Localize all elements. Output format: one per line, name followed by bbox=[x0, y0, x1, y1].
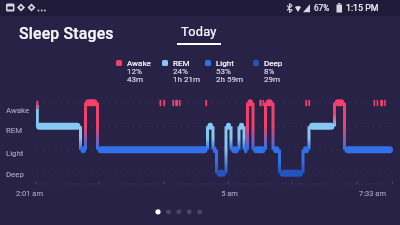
staticText: 5 am bbox=[221, 189, 238, 198]
staticText: 1:15 PM bbox=[346, 3, 379, 13]
staticText: Light bbox=[6, 149, 24, 158]
staticText: 2h 59m bbox=[216, 75, 243, 84]
staticText: Sleep Stages bbox=[19, 24, 114, 43]
staticText: 7:33 am bbox=[359, 189, 386, 198]
staticText: REM bbox=[6, 126, 23, 135]
staticText: REM bbox=[173, 59, 190, 68]
staticText: Today bbox=[181, 24, 217, 39]
staticText: 29m bbox=[264, 75, 281, 84]
staticText: 2:01 am bbox=[16, 189, 43, 198]
staticText: 43m bbox=[127, 75, 144, 84]
button[interactable]: Today bbox=[168, 22, 230, 45]
staticText: Deep bbox=[6, 170, 24, 179]
staticText: 1h 21m bbox=[173, 75, 200, 84]
staticText: Light bbox=[216, 59, 234, 68]
staticText: Awake bbox=[6, 106, 30, 115]
staticText: 8% bbox=[264, 67, 275, 76]
staticText: 24% bbox=[173, 67, 188, 76]
staticText: Awake bbox=[127, 59, 151, 68]
staticText: 67% bbox=[314, 3, 330, 13]
staticText: 12% bbox=[127, 67, 142, 76]
staticText: Deep bbox=[264, 59, 283, 68]
staticText: 53% bbox=[216, 67, 231, 76]
